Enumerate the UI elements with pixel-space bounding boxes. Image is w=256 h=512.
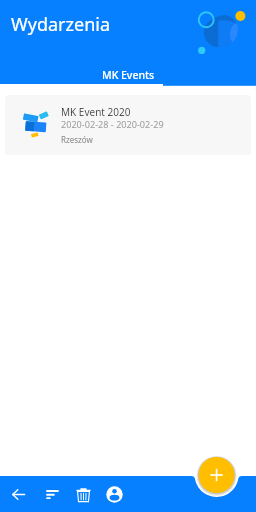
- staticText: 2020-02-28 - 2020-02-29: [61, 118, 164, 130]
- staticText: Rzeszów: [61, 134, 93, 145]
- button[interactable]: Delete: [68, 479, 99, 510]
- staticText: Wydarzenia: [11, 12, 110, 37]
- staticText: MK Event 2020: [61, 105, 131, 119]
- button[interactable]: MK Event 2020: [5, 95, 251, 155]
- button[interactable]: Back: [3, 479, 34, 510]
- button[interactable]: MK Events: [93, 68, 163, 86]
- button[interactable]: Add event: [199, 455, 235, 491]
- staticText: MK Events: [102, 68, 155, 82]
- button[interactable]: Account: [99, 479, 130, 510]
- button[interactable]: Sort: [37, 479, 68, 510]
